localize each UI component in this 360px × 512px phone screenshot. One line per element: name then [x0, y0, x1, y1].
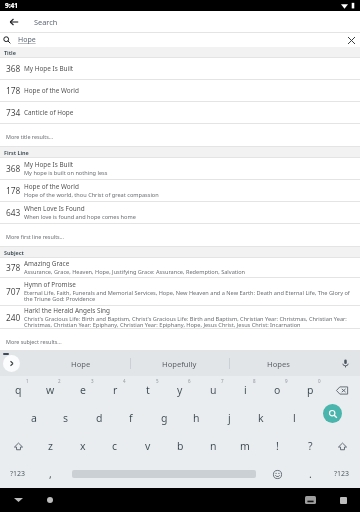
- button[interactable]: Clear query: [342, 33, 360, 47]
- button[interactable]: e: [67, 376, 99, 404]
- button[interactable]: c: [99, 432, 131, 460]
- staticText: c: [112, 439, 118, 453]
- staticText: Hopefully: [162, 359, 197, 369]
- button[interactable]: 643: [0, 202, 360, 223]
- staticText: u: [210, 383, 217, 397]
- staticText: x: [80, 439, 86, 453]
- staticText: Search: [34, 17, 58, 27]
- button[interactable]: Emoji: [261, 460, 293, 488]
- button[interactable]: More first line results...: [0, 224, 360, 246]
- staticText: o: [274, 383, 281, 397]
- staticText: 9:41: [5, 1, 18, 10]
- staticText: Title: [4, 49, 16, 56]
- staticText: e: [80, 383, 86, 397]
- button[interactable]: More title results...: [0, 124, 360, 146]
- button[interactable]: Space: [72, 460, 256, 488]
- staticText: 178: [6, 85, 21, 96]
- button[interactable]: 368: [0, 158, 360, 179]
- staticText: When Love Is Found: [24, 204, 85, 213]
- staticText: 2: [58, 378, 61, 384]
- staticText: 734: [6, 107, 21, 118]
- button[interactable]: p: [294, 376, 326, 404]
- button[interactable]: x: [67, 432, 99, 460]
- button[interactable]: Voice input: [334, 351, 356, 376]
- button[interactable]: n: [197, 432, 229, 460]
- button[interactable]: g: [148, 404, 180, 432]
- button[interactable]: v: [132, 432, 164, 460]
- button[interactable]: 734: [0, 102, 360, 123]
- button[interactable]: i: [229, 376, 261, 404]
- button[interactable]: Hopefully: [130, 351, 229, 376]
- staticText: 6: [188, 378, 191, 384]
- staticText: d: [96, 411, 103, 425]
- button[interactable]: m: [229, 432, 261, 460]
- staticText: Hymn of Promise: [24, 280, 76, 289]
- staticText: 1: [26, 378, 29, 384]
- staticText: My hope is built on nothing less: [24, 169, 108, 177]
- button[interactable]: ?: [294, 432, 326, 460]
- staticText: g: [161, 411, 168, 425]
- button[interactable]: 178: [0, 80, 360, 101]
- button[interactable]: Search: [323, 404, 342, 423]
- button[interactable]: t: [132, 376, 164, 404]
- button[interactable]: Back: [0, 11, 28, 32]
- button[interactable]: Hopes: [229, 351, 328, 376]
- button[interactable]: Backspace: [326, 376, 358, 404]
- button[interactable]: .: [294, 460, 326, 488]
- button[interactable]: l: [278, 404, 310, 432]
- staticText: i: [244, 383, 247, 397]
- button[interactable]: b: [164, 432, 196, 460]
- button[interactable]: More subject results...: [0, 329, 360, 350]
- staticText: p: [307, 383, 314, 397]
- button[interactable]: y: [164, 376, 196, 404]
- button[interactable]: More suggestions: [3, 355, 20, 372]
- button[interactable]: ?123: [2, 460, 34, 488]
- staticText: !: [276, 439, 279, 453]
- staticText: 7: [221, 378, 224, 384]
- button[interactable]: z: [34, 432, 66, 460]
- staticText: Hope: [18, 35, 36, 45]
- button[interactable]: h: [180, 404, 212, 432]
- button[interactable]: f: [115, 404, 147, 432]
- button[interactable]: Recent apps: [326, 488, 360, 512]
- staticText: Hope of the world, thou Christ of great …: [24, 191, 159, 199]
- button[interactable]: k: [245, 404, 277, 432]
- button[interactable]: r: [99, 376, 131, 404]
- button[interactable]: Home: [36, 488, 64, 512]
- button[interactable]: u: [197, 376, 229, 404]
- staticText: 4: [123, 378, 126, 384]
- button[interactable]: Shift: [2, 432, 34, 460]
- button[interactable]: q: [2, 376, 34, 404]
- staticText: t: [146, 383, 150, 397]
- button[interactable]: Shift: [326, 432, 358, 460]
- button[interactable]: d: [83, 404, 115, 432]
- button[interactable]: j: [213, 404, 245, 432]
- staticText: My Hope Is Built: [24, 160, 74, 169]
- staticText: z: [48, 439, 53, 453]
- button[interactable]: w: [34, 376, 66, 404]
- button[interactable]: a: [18, 404, 50, 432]
- button[interactable]: o: [261, 376, 293, 404]
- button[interactable]: 378: [0, 258, 360, 277]
- staticText: Hope of the World: [24, 182, 79, 191]
- staticText: 378: [6, 262, 21, 273]
- button[interactable]: 240: [0, 306, 360, 328]
- button[interactable]: Change keyboard: [294, 488, 326, 512]
- button[interactable]: s: [50, 404, 82, 432]
- staticText: s: [63, 411, 69, 425]
- staticText: When love is found and hope comes home: [24, 213, 136, 221]
- button[interactable]: 368: [0, 58, 360, 79]
- button[interactable]: ?123: [326, 460, 358, 488]
- button[interactable]: 178: [0, 180, 360, 201]
- staticText: h: [193, 411, 200, 425]
- staticText: 178: [6, 185, 21, 196]
- button[interactable]: Hope: [31, 351, 130, 376]
- button[interactable]: Back: [0, 488, 36, 512]
- staticText: a: [31, 411, 37, 425]
- button[interactable]: 707: [0, 278, 360, 305]
- staticText: 240: [6, 312, 21, 323]
- staticText: y: [177, 383, 183, 397]
- button[interactable]: !: [261, 432, 293, 460]
- button[interactable]: ,: [34, 460, 66, 488]
- staticText: 643: [6, 207, 21, 218]
